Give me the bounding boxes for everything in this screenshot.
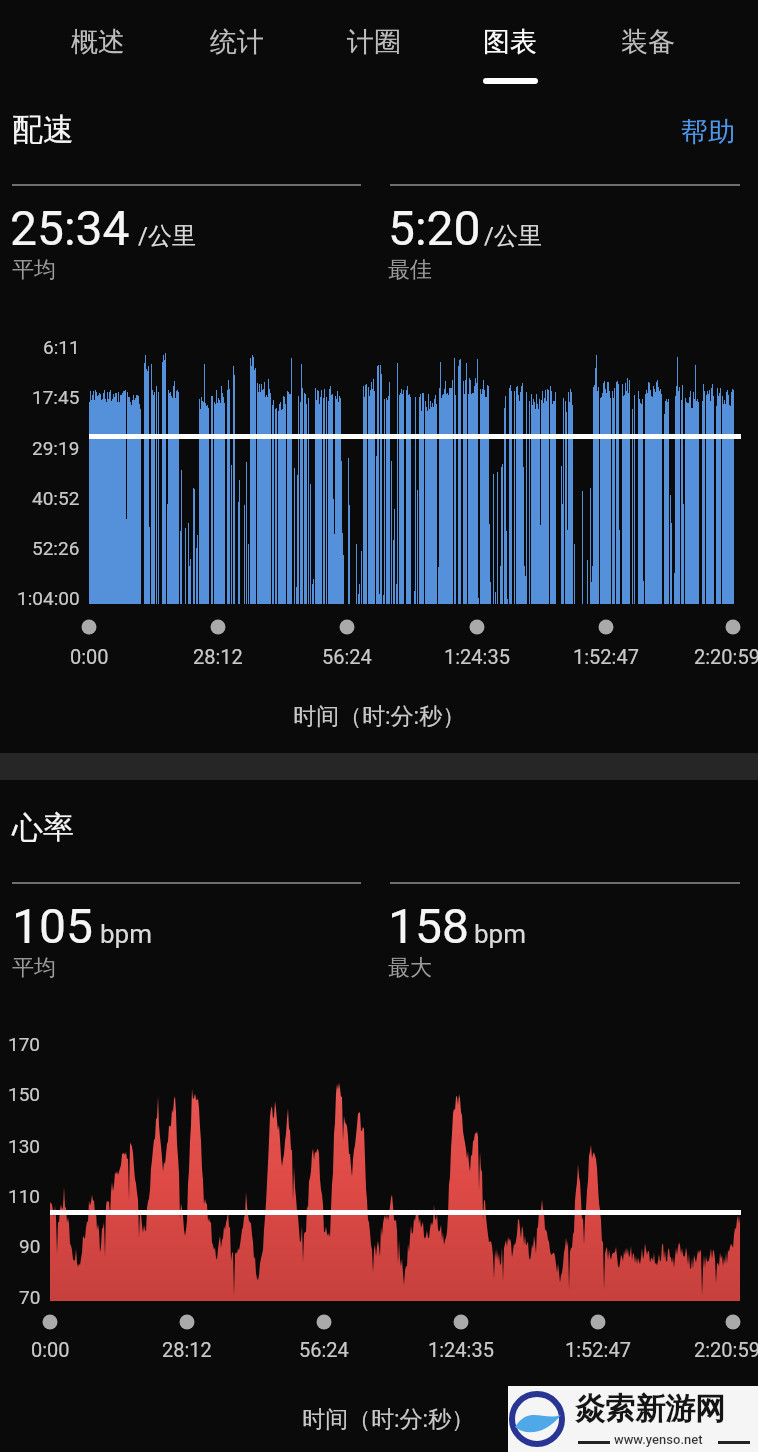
staticText: 158 (388, 898, 469, 954)
staticText: 56:24 (322, 645, 372, 668)
button[interactable]: 概述 (43, 12, 153, 72)
button[interactable]: 装备 (593, 12, 703, 72)
staticText: 70 (19, 1286, 41, 1308)
button[interactable]: 帮助 (668, 110, 748, 154)
staticText: 0:00 (31, 1338, 70, 1361)
staticText: 图表 (483, 25, 537, 59)
staticText: 最大 (388, 954, 432, 982)
staticText: 1:52:47 (573, 645, 639, 668)
staticText: 2:20:59 (694, 1338, 758, 1361)
staticText: 28:12 (193, 645, 243, 668)
staticText: 28:12 (162, 1338, 212, 1361)
staticText: 25:34 (10, 200, 130, 256)
staticText: 17:45 (32, 386, 80, 408)
staticText: 概述 (71, 25, 125, 59)
staticText: 150 (8, 1083, 41, 1105)
staticText: 1:04:00 (17, 587, 80, 609)
staticText: 配速 (12, 110, 74, 149)
staticText: 焱索新游网 (575, 1390, 725, 1428)
staticText: www.yenso.net (614, 1432, 703, 1447)
button[interactable]: 计圈 (319, 12, 429, 72)
staticText: 时间（时:分:秒） (293, 702, 466, 731)
staticText: 0:00 (70, 645, 109, 668)
staticText: bpm (474, 919, 526, 949)
staticText: 统计 (210, 25, 264, 59)
staticText: 装备 (621, 25, 675, 59)
staticText: 平均 (12, 256, 56, 284)
staticText: bpm (100, 919, 152, 949)
staticText: 2:20:59 (694, 645, 758, 668)
staticText: /公里 (138, 221, 196, 251)
staticText: 1:52:47 (565, 1338, 631, 1361)
staticText: 时间（时:分:秒） (302, 1405, 475, 1434)
staticText: 6:11 (43, 336, 80, 358)
staticText: 平均 (12, 954, 56, 982)
staticText: 29:19 (32, 437, 80, 459)
staticText: 105 (12, 898, 93, 954)
staticText: /公里 (484, 221, 542, 251)
staticText: 40:52 (32, 487, 80, 509)
staticText: 170 (8, 1033, 41, 1055)
staticText: 1:24:35 (428, 1338, 494, 1361)
button[interactable]: 统计 (182, 12, 292, 72)
staticText: 90 (19, 1235, 41, 1257)
staticText: 130 (8, 1135, 41, 1157)
staticText: 计圈 (347, 25, 401, 59)
staticText: 帮助 (681, 115, 735, 149)
staticText: 最佳 (388, 256, 432, 284)
staticText: 52:26 (32, 537, 80, 559)
staticText: 心率 (12, 808, 74, 847)
button[interactable]: 图表 (455, 12, 565, 72)
staticText: 110 (8, 1185, 41, 1207)
staticText: 56:24 (299, 1338, 349, 1361)
staticText: 5:20 (388, 200, 481, 256)
staticText: 1:24:35 (444, 645, 510, 668)
